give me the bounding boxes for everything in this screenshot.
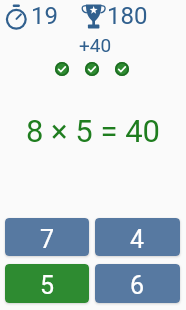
- staticText: 7: [40, 225, 55, 254]
- button[interactable]: 5: [5, 264, 89, 303]
- staticText: 180: [107, 2, 148, 30]
- button[interactable]: 7: [5, 218, 89, 256]
- staticText: 5: [40, 271, 55, 300]
- staticText: 8 × 5 = 40: [0, 113, 186, 149]
- staticText: 19: [31, 2, 58, 30]
- staticText: 4: [130, 225, 145, 254]
- button[interactable]: 4: [95, 218, 180, 256]
- staticText: 6: [130, 271, 145, 300]
- staticText: +40: [79, 34, 112, 56]
- button[interactable]: 6: [95, 264, 180, 303]
